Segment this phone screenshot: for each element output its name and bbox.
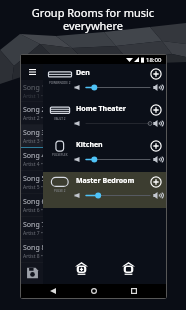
button[interactable]: Rooms — [119, 260, 137, 278]
button[interactable]: Home — [86, 284, 102, 298]
button[interactable]: PULSE 2 — [43, 172, 166, 208]
staticText: Song 5 — [23, 174, 43, 184]
button[interactable]: VAULT 2 — [43, 100, 166, 136]
staticText: Song 8 — [23, 243, 43, 253]
staticText: Song 4 — [23, 151, 43, 161]
button[interactable]: Song 7 — [21, 217, 43, 240]
staticText: Song 2 — [23, 105, 43, 115]
staticText: Master Bedroom — [76, 176, 135, 186]
button[interactable]: Add room — [72, 260, 90, 278]
staticText: Den — [76, 68, 90, 78]
staticText: Artist 2 • A — [23, 115, 43, 122]
staticText: PULSEFLEX — [52, 153, 68, 157]
button[interactable]: Song 1 — [21, 80, 43, 102]
staticText: Artist 8 • A — [23, 253, 43, 260]
staticText: Song 6 — [23, 197, 43, 207]
button[interactable]: Volume — [86, 84, 150, 91]
staticText: 18:00 — [146, 56, 162, 64]
button[interactable]: PULSEFLEX — [43, 136, 166, 172]
button[interactable]: Back — [45, 284, 61, 298]
button[interactable]: Song 4 — [21, 148, 43, 171]
staticText: Song 1 — [23, 83, 43, 93]
staticText: Artist 4 • A — [23, 161, 43, 168]
staticText: VAULT 2 — [54, 117, 66, 121]
staticText: Artist 5 • A — [23, 184, 43, 191]
button[interactable]: Song 2 — [21, 102, 43, 125]
button[interactable]: POWERNODE 2 — [43, 64, 166, 100]
button[interactable]: Add speaker — [150, 176, 162, 188]
staticText: Artist 7 • A — [23, 230, 43, 237]
staticText: Group Rooms for music everywhere — [0, 5, 186, 33]
staticText: Home Theater — [76, 104, 126, 114]
button[interactable]: Song 8 — [21, 240, 43, 263]
button[interactable]: Add speaker — [150, 68, 162, 80]
button[interactable]: Add speaker — [150, 140, 162, 152]
staticText: Artist 1 • A — [23, 93, 43, 100]
staticText: Kitchen — [76, 140, 103, 150]
button[interactable]: Recents — [126, 284, 142, 298]
staticText: Song 3 — [23, 128, 43, 138]
button[interactable]: Add speaker — [150, 104, 162, 116]
button[interactable]: Volume — [86, 120, 150, 127]
staticText: POWERNODE 2 — [49, 81, 71, 85]
staticText: Song 7 — [23, 220, 43, 230]
button[interactable]: Song 6 — [21, 194, 43, 217]
button[interactable]: Song 3 — [21, 125, 43, 148]
staticText: Artist 3 • A — [23, 138, 43, 145]
button[interactable]: Volume — [86, 192, 150, 199]
staticText: PULSE 2 — [54, 189, 66, 193]
button[interactable]: Save — [21, 263, 43, 283]
button[interactable]: Song 5 — [21, 171, 43, 194]
staticText: Artist 6 • A — [23, 207, 43, 214]
button[interactable]: Volume — [86, 156, 150, 163]
button[interactable]: Menu — [21, 64, 43, 80]
